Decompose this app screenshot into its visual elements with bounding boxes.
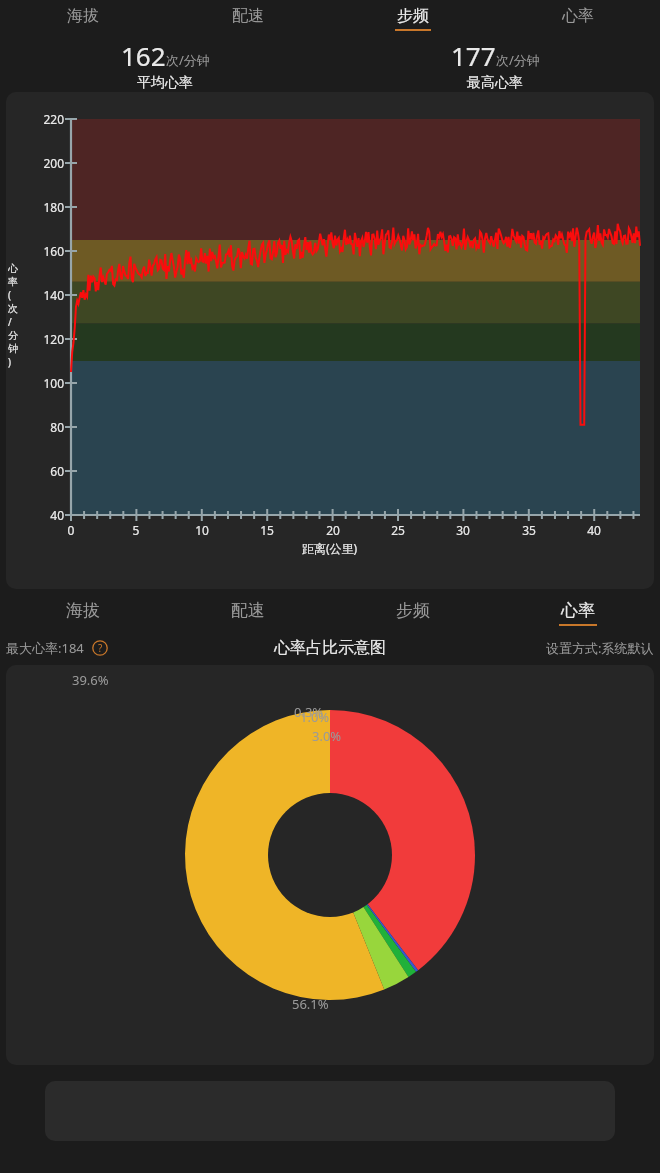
- staticText: 距离(公里): [302, 540, 358, 556]
- staticText: 次/分钟: [166, 51, 210, 69]
- staticText: 160: [26, 243, 64, 259]
- staticText: 25: [380, 522, 416, 538]
- staticText: 率: [8, 275, 18, 288]
- staticText: 177: [451, 38, 496, 73]
- staticText: 1.0%: [300, 708, 330, 726]
- staticText: 步频: [397, 6, 429, 26]
- staticText: 3.0%: [312, 727, 342, 745]
- staticText: 80: [26, 419, 64, 435]
- staticText: 0.3%: [294, 703, 324, 721]
- staticText: 120: [26, 331, 64, 347]
- staticText: ?: [98, 641, 103, 655]
- staticText: 最大心率:184: [6, 639, 84, 657]
- staticText: 0: [53, 522, 89, 538]
- button[interactable]: 海拔: [0, 2, 165, 34]
- staticText: 心率: [562, 6, 594, 26]
- staticText: 心率: [561, 600, 595, 621]
- staticText: 35: [511, 522, 547, 538]
- staticText: ): [8, 355, 11, 369]
- staticText: 分: [8, 329, 18, 342]
- staticText: 40: [576, 522, 612, 538]
- staticText: 40: [26, 507, 64, 523]
- staticText: 60: [26, 463, 64, 479]
- staticText: 30: [445, 522, 481, 538]
- staticText: 39.6%: [72, 671, 109, 689]
- button[interactable]: 步频: [330, 595, 495, 631]
- button[interactable]: 海拔: [0, 595, 165, 631]
- staticText: 56.1%: [292, 995, 329, 1013]
- button[interactable]: 心率: [495, 595, 660, 631]
- staticText: 心率占比示意图: [274, 638, 386, 658]
- button[interactable]: 配速: [165, 2, 330, 34]
- staticText: 180: [26, 199, 64, 215]
- staticText: 次: [8, 302, 18, 315]
- staticText: 海拔: [66, 600, 100, 621]
- staticText: 220: [26, 111, 64, 127]
- other: Help: [92, 640, 108, 656]
- staticText: 20: [315, 522, 351, 538]
- staticText: 162: [121, 38, 166, 73]
- staticText: 配速: [232, 6, 264, 26]
- staticText: 海拔: [67, 6, 99, 26]
- staticText: (: [8, 288, 11, 302]
- button[interactable]: 配速: [165, 595, 330, 631]
- staticText: 配速: [231, 600, 265, 621]
- staticText: 次/分钟: [496, 51, 540, 69]
- staticText: 平均心率: [137, 74, 193, 92]
- staticText: 15: [249, 522, 285, 538]
- staticText: 设置方式:系统默认: [546, 639, 654, 657]
- staticText: 步频: [396, 600, 430, 621]
- staticText: /: [8, 315, 12, 329]
- staticText: 5: [118, 522, 154, 538]
- staticText: 100: [26, 375, 64, 391]
- button[interactable]: 步频: [330, 2, 495, 34]
- staticText: 140: [26, 287, 64, 303]
- staticText: 10: [184, 522, 220, 538]
- staticText: 最高心率: [467, 74, 523, 92]
- staticText: 钟: [8, 342, 18, 355]
- staticText: 200: [26, 155, 64, 171]
- button[interactable]: 最大心率:184: [6, 639, 274, 657]
- staticText: 心: [8, 262, 18, 275]
- button[interactable]: 心率: [495, 2, 660, 34]
